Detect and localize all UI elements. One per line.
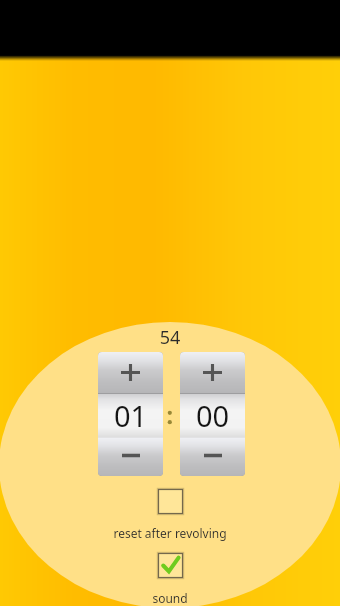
- staticText: 01: [114, 396, 148, 435]
- staticText: sound: [0, 590, 340, 606]
- button[interactable]: Decrement: [98, 438, 163, 476]
- staticText: 54: [0, 325, 340, 350]
- button[interactable]: Increment: [180, 352, 245, 393]
- staticText: reset after revolving: [0, 525, 340, 541]
- button[interactable]: Decrement: [180, 438, 245, 476]
- staticText: 00: [196, 396, 230, 435]
- button[interactable]: Increment: [98, 352, 163, 393]
- button[interactable]: Unchecked: [157, 488, 184, 515]
- button[interactable]: Checked: [157, 552, 184, 579]
